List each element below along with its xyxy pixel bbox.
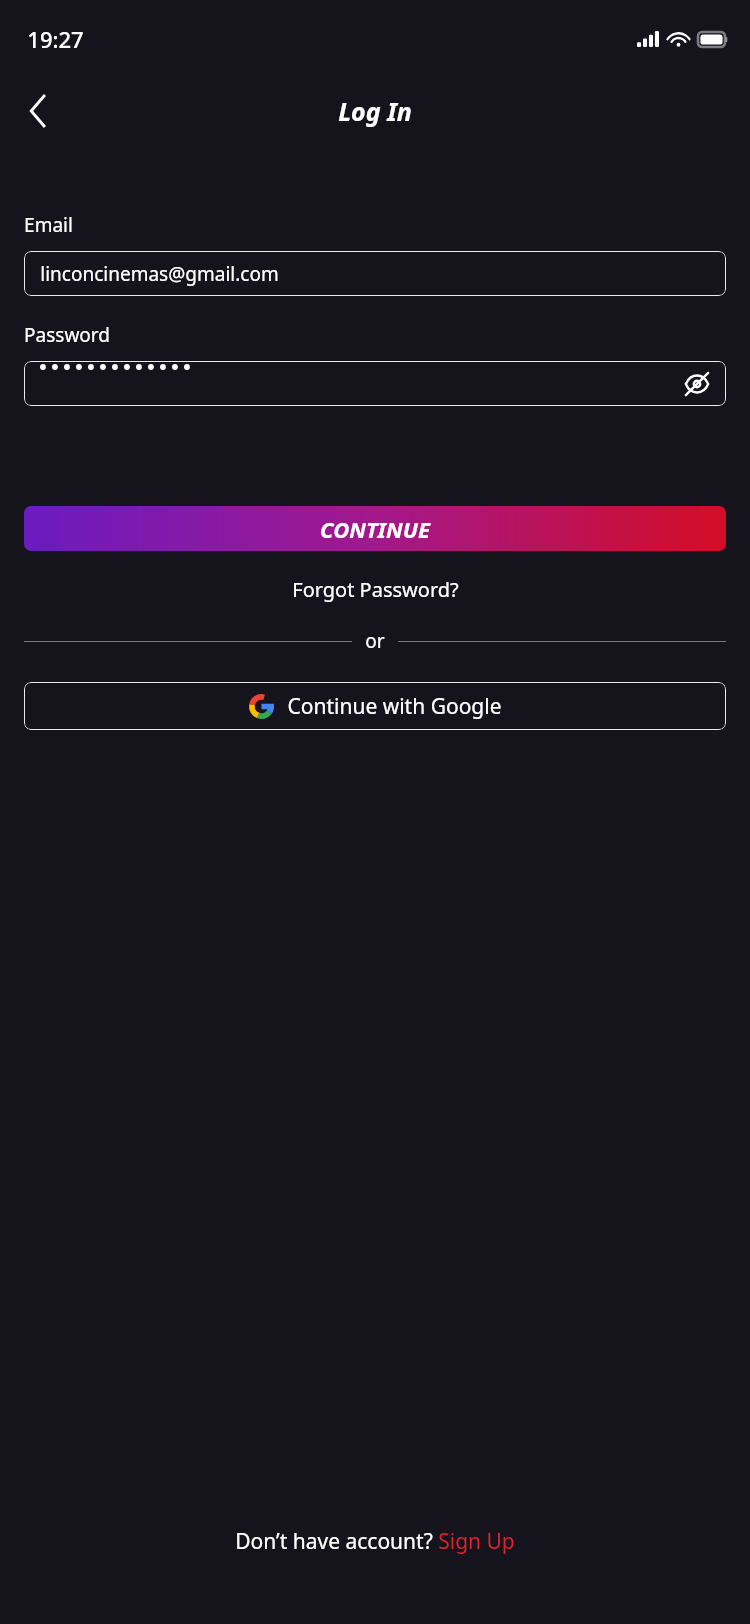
staticText: Forgot Password? bbox=[292, 576, 459, 603]
staticText: Log In bbox=[338, 94, 412, 128]
button[interactable]: Continue with Google bbox=[24, 682, 726, 730]
staticText: CONTINUE bbox=[320, 514, 430, 544]
button[interactable]: linconcinemas@gmail.com bbox=[24, 251, 726, 296]
staticText: Password bbox=[24, 322, 110, 348]
staticText: linconcinemas@gmail.com bbox=[40, 261, 279, 287]
button[interactable]: CONTINUE bbox=[24, 506, 726, 551]
button[interactable]: Show password bbox=[676, 363, 718, 405]
staticText: Email bbox=[24, 212, 73, 238]
button[interactable]: Forgot Password? bbox=[280, 570, 471, 609]
button[interactable]: Show password bbox=[24, 361, 726, 406]
staticText: 19:27 bbox=[27, 24, 84, 54]
staticText: Don’t have account? Sign Up bbox=[235, 1527, 515, 1556]
button[interactable]: Don’t have account? Sign Up bbox=[225, 1521, 525, 1562]
button[interactable]: Back bbox=[10, 83, 66, 139]
staticText: or bbox=[365, 628, 385, 654]
staticText: Continue with Google bbox=[287, 692, 502, 721]
